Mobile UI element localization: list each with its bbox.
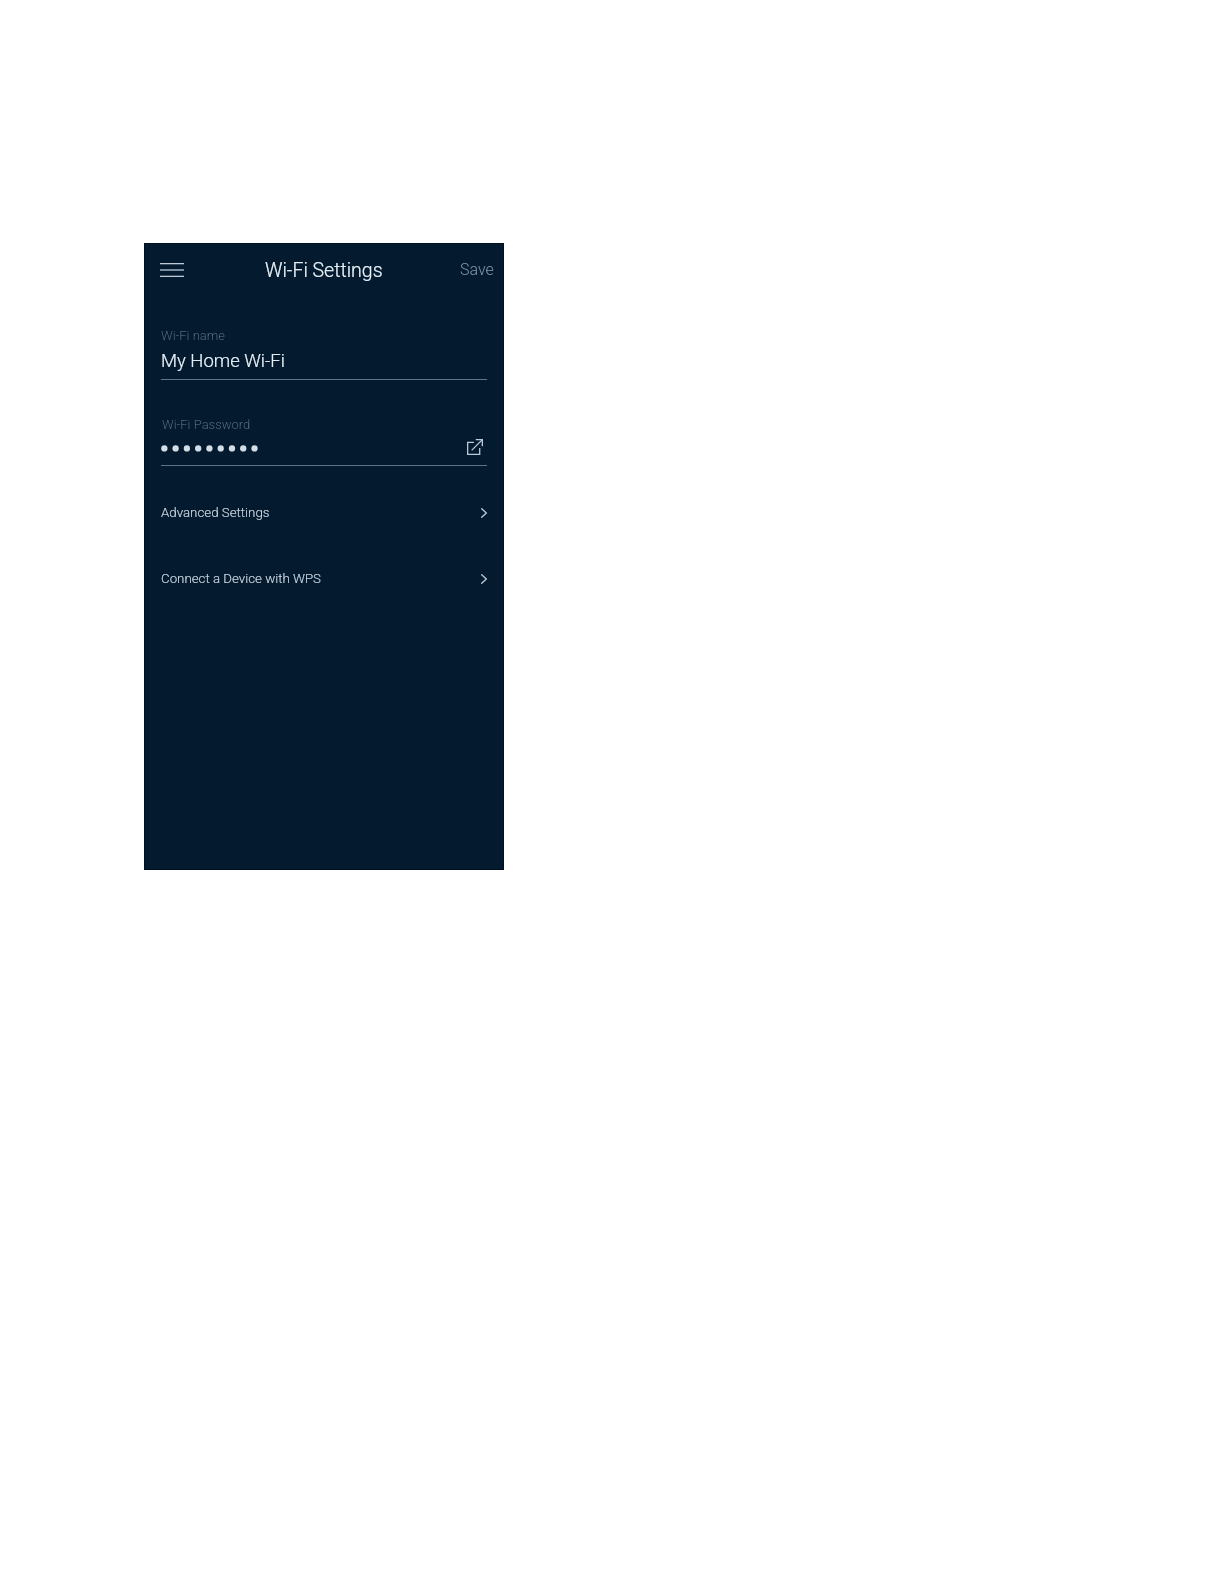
button[interactable]: Open Wi-Fi password [459, 431, 491, 463]
staticText: Save [460, 260, 494, 279]
staticText: Connect a Device with WPS [161, 571, 321, 587]
staticText: Wi-Fi Settings [265, 259, 383, 282]
staticText: Wi-Fi name [161, 328, 226, 343]
button[interactable]: Open navigation menu [152, 251, 192, 288]
button[interactable]: Advanced Settings [144, 491, 504, 535]
button[interactable]: Connect a Device with WPS [144, 557, 504, 601]
button[interactable]: Save [453, 254, 501, 284]
staticText: Advanced Settings [161, 505, 270, 521]
staticText: Wi-Fi Password [162, 417, 251, 432]
staticText: My Home Wi-Fi [161, 350, 285, 372]
